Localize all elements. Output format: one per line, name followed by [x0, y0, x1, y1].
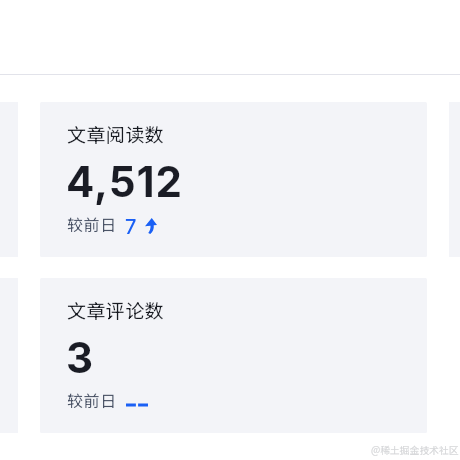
- staticText: 文章评论数: [67, 296, 165, 324]
- staticText: 较前日: [67, 212, 117, 235]
- staticText: 3: [66, 332, 95, 383]
- other: 上升: [145, 218, 157, 234]
- staticText: 4,512: [66, 156, 183, 207]
- staticText: 7: [125, 215, 137, 239]
- button[interactable]: 文章阅读数: [40, 102, 427, 257]
- button[interactable]: 文章评论数: [40, 278, 427, 433]
- staticText: 文章阅读数: [67, 120, 165, 148]
- staticText: 较前日: [67, 388, 117, 411]
- staticText: @稀土掘金技术社区: [371, 443, 459, 457]
